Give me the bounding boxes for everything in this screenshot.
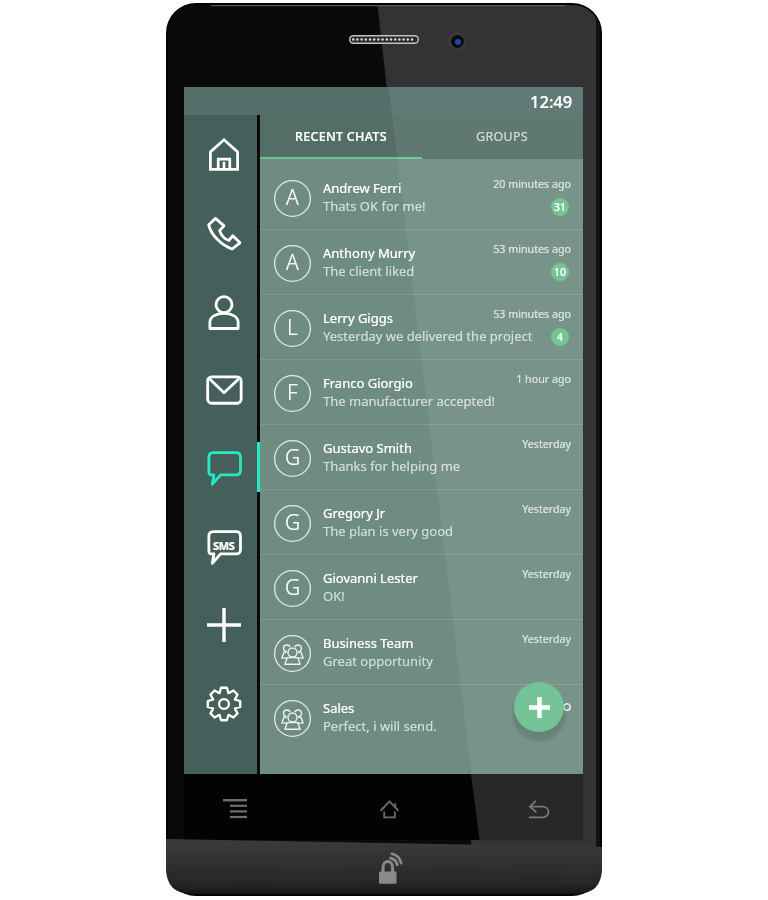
staticText: 53 minutes ago bbox=[471, 307, 571, 322]
staticText: Yesterday bbox=[471, 632, 571, 647]
staticText: 31 bbox=[554, 200, 566, 214]
button[interactable]: New chat bbox=[514, 682, 564, 732]
staticText: G bbox=[285, 508, 301, 537]
staticText: 1 hour ago bbox=[471, 372, 571, 387]
staticText: Andrew Ferri bbox=[323, 179, 402, 197]
staticText: Gustavo Smith bbox=[323, 439, 412, 457]
staticText: Thats OK for me! bbox=[323, 197, 426, 215]
staticText: RECENT CHATS bbox=[295, 128, 387, 145]
button[interactable]: A bbox=[260, 164, 583, 229]
staticText: Anthony Murry bbox=[323, 244, 416, 262]
button[interactable]: Home bbox=[187, 116, 260, 194]
staticText: Sales bbox=[323, 699, 355, 717]
staticText: Yesterday we delivered the project bbox=[323, 327, 533, 345]
button[interactable]: Sales bbox=[260, 684, 583, 749]
button[interactable]: Chats bbox=[187, 429, 260, 507]
staticText: Yesterday bbox=[471, 502, 571, 517]
staticText: A bbox=[286, 183, 299, 212]
button[interactable]: G bbox=[260, 554, 583, 619]
staticText: Lerry Giggs bbox=[323, 309, 393, 327]
button[interactable]: RECENT CHATS bbox=[260, 115, 421, 159]
staticText: Great opportunity bbox=[323, 652, 433, 670]
button[interactable]: Settings bbox=[187, 665, 260, 743]
button[interactable]: New bbox=[187, 586, 260, 664]
button[interactable]: SMS bbox=[187, 508, 260, 586]
staticText: The client liked bbox=[323, 262, 415, 280]
button[interactable]: Back bbox=[516, 789, 561, 829]
button[interactable]: Home bbox=[367, 789, 412, 829]
staticText: Yesterday bbox=[471, 567, 571, 582]
staticText: Thanks for helping me bbox=[323, 457, 461, 475]
button[interactable]: Mail bbox=[187, 351, 260, 429]
staticText: OK! bbox=[323, 587, 345, 605]
staticText: Yesterday bbox=[471, 437, 571, 452]
staticText: 53 minutes ago bbox=[471, 242, 571, 257]
staticText: Perfect, i will send. bbox=[323, 717, 437, 735]
button[interactable]: Business Team bbox=[260, 619, 583, 684]
button[interactable]: Menu bbox=[212, 788, 257, 828]
staticText: G bbox=[285, 573, 301, 602]
staticText: GROUPS bbox=[476, 128, 529, 145]
staticText: SMS bbox=[213, 538, 235, 553]
staticText: Gregory Jr bbox=[323, 504, 386, 522]
staticText: The manufacturer accepted! bbox=[323, 392, 496, 410]
staticText: Business Team bbox=[323, 634, 414, 652]
button[interactable]: L bbox=[260, 294, 583, 359]
staticText: G bbox=[285, 443, 301, 472]
staticText: A bbox=[286, 248, 299, 277]
button[interactable]: GROUPS bbox=[421, 115, 583, 159]
button[interactable]: G bbox=[260, 489, 583, 554]
staticText: F bbox=[287, 378, 298, 407]
button[interactable]: Calls bbox=[187, 194, 260, 272]
button[interactable]: Contacts bbox=[187, 273, 260, 351]
staticText: 4 bbox=[557, 330, 563, 344]
button[interactable]: G bbox=[260, 424, 583, 489]
staticText: 12:49 bbox=[530, 90, 573, 112]
staticText bbox=[471, 697, 571, 712]
staticText: The plan is very good bbox=[323, 522, 454, 540]
staticText: L bbox=[287, 313, 298, 342]
staticText: Giovanni Lester bbox=[323, 569, 418, 587]
staticText: Franco Giorgio bbox=[323, 374, 413, 392]
staticText: 10 bbox=[554, 265, 566, 279]
staticText: 20 minutes ago bbox=[471, 177, 571, 192]
button[interactable]: A bbox=[260, 229, 583, 294]
button[interactable]: F bbox=[260, 359, 583, 424]
